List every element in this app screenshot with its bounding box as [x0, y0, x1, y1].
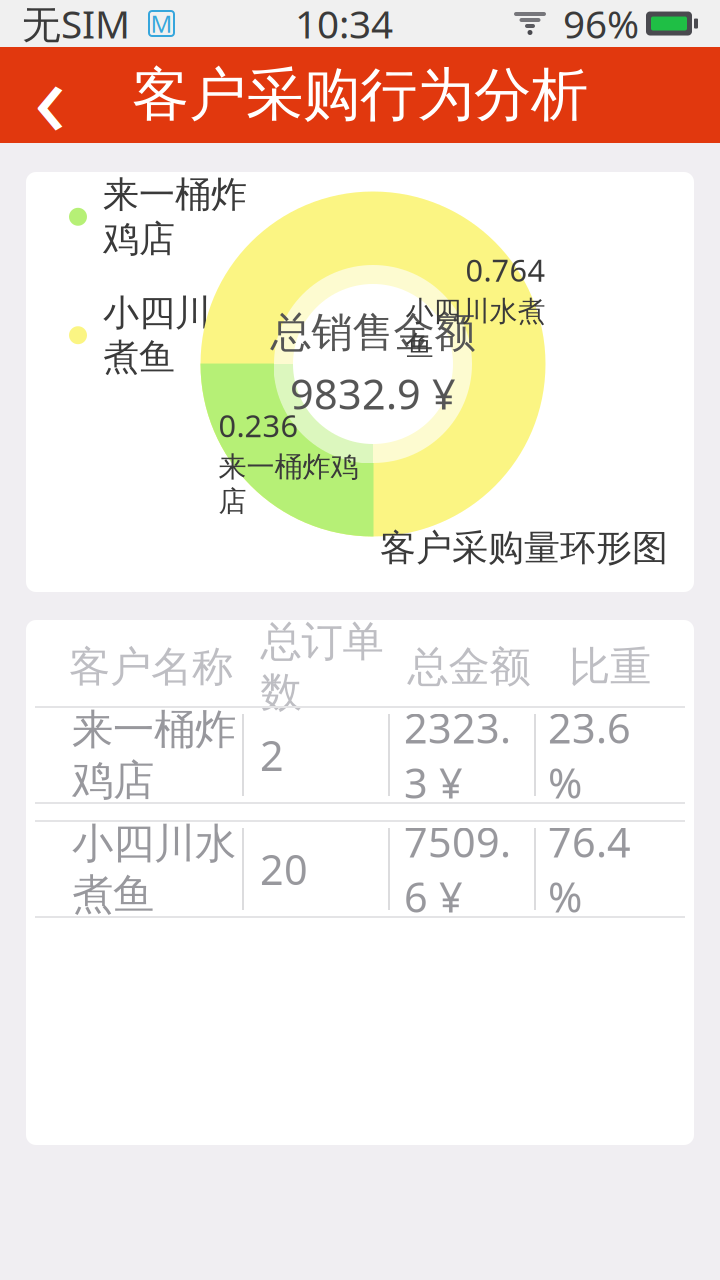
staticText: М	[150, 8, 172, 39]
staticText: 来一桶炸鸡店	[218, 450, 358, 518]
staticText: 小四川水煮鱼	[103, 291, 247, 379]
staticText: 来一桶炸鸡店	[72, 704, 236, 806]
staticText: 小四川水煮鱼	[405, 294, 545, 363]
staticText: 76.4%	[548, 814, 631, 924]
staticText: 总金额	[407, 642, 530, 692]
staticText: 比重	[569, 642, 651, 692]
staticText: 23.6%	[548, 700, 631, 810]
staticText: 客户采购行为分析	[132, 60, 588, 130]
staticText: 总订单数	[260, 616, 383, 718]
staticText: 0.236	[218, 405, 298, 446]
staticText: 0.764	[465, 249, 545, 290]
staticText: 96%	[563, 0, 639, 49]
button[interactable]: Back	[0, 47, 100, 143]
staticText: 小四川水煮鱼	[72, 818, 236, 920]
staticText: 客户采购量环形图	[380, 526, 668, 570]
staticText: 20	[260, 842, 308, 896]
staticText: 9832.9 ¥	[290, 366, 456, 421]
staticText: 总销售金额	[270, 307, 475, 358]
staticText: 2	[260, 728, 284, 782]
staticText: 来一桶炸鸡店	[103, 173, 247, 261]
staticText: 7509.6 ¥	[404, 814, 511, 924]
staticText: 10:34	[295, 0, 393, 49]
staticText: ‹	[33, 24, 66, 166]
staticText: 客户名称	[69, 642, 233, 692]
staticText: 无SIM	[22, 0, 130, 49]
staticText: 2323.3 ¥	[404, 700, 511, 810]
